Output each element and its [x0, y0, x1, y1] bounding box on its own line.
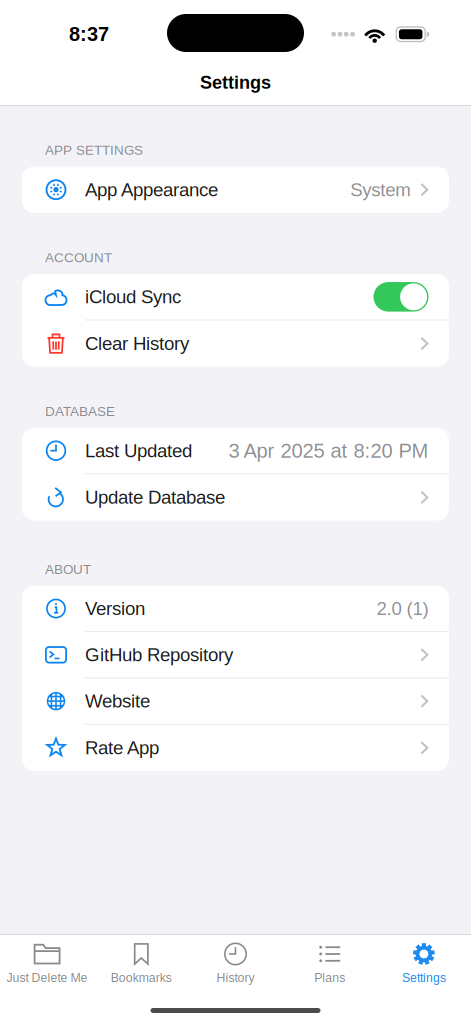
staticText: 8:37 — [69, 23, 109, 45]
button[interactable]: Settings — [377, 935, 471, 997]
button[interactable]: Clear History — [22, 320, 449, 367]
staticText: Just Delete Me — [7, 971, 88, 985]
staticText: Bookmarks — [111, 971, 172, 985]
staticText: App Appearance — [85, 179, 218, 200]
staticText: History — [216, 971, 254, 985]
button[interactable]: Website — [22, 678, 449, 725]
staticText: Update Database — [85, 487, 225, 508]
staticText: Plans — [314, 971, 345, 985]
staticText: Version — [85, 598, 145, 619]
staticText: Settings — [402, 971, 446, 985]
staticText: ACCOUNT — [45, 250, 112, 265]
staticText: Settings — [200, 72, 271, 93]
button[interactable]: Last Updated — [22, 428, 449, 474]
button[interactable]: GitHub Repository — [22, 632, 449, 678]
button[interactable]: Plans — [283, 935, 377, 997]
staticText: ABOUT — [45, 562, 91, 577]
staticText: System — [350, 179, 411, 200]
staticText: Clear History — [85, 333, 189, 354]
button[interactable]: Version — [22, 586, 449, 632]
staticText: Last Updated — [85, 440, 192, 461]
button[interactable]: Update Database — [22, 474, 449, 520]
staticText: GitHub Repository — [85, 644, 233, 665]
button[interactable]: Bookmarks — [94, 935, 188, 997]
staticText: 2.0 (1) — [376, 598, 428, 619]
staticText: iCloud Sync — [85, 286, 181, 307]
staticText: Website — [85, 691, 150, 712]
button[interactable]: App Appearance — [22, 166, 449, 213]
staticText: 3 Apr 2025 at 8:20 PM — [228, 439, 428, 462]
staticText: DATABASE — [45, 404, 115, 419]
button[interactable]: Just Delete Me — [0, 935, 94, 997]
staticText: Rate App — [85, 737, 159, 758]
button[interactable]: iCloud Sync — [22, 274, 449, 320]
button[interactable]: Rate App — [22, 725, 449, 771]
staticText: APP SETTINGS — [45, 142, 143, 157]
button[interactable]: History — [188, 935, 283, 997]
